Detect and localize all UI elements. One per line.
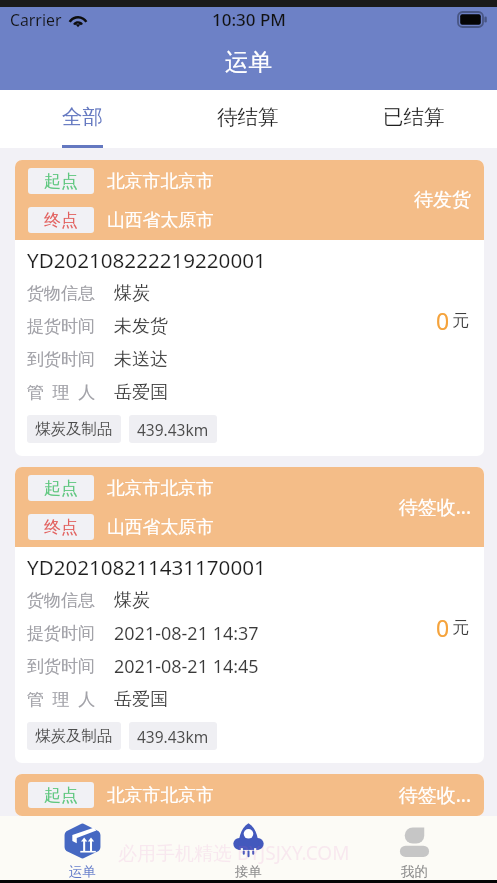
staticText: 提货时间	[27, 623, 95, 644]
button[interactable]: 接单	[165, 816, 331, 880]
button[interactable]: 起点	[15, 774, 484, 816]
staticText: 我的	[401, 863, 428, 880]
staticText: 北京市北京市	[107, 784, 214, 806]
staticText: 运单	[225, 47, 272, 77]
staticText: 运单	[69, 863, 96, 880]
staticText: 未送达	[114, 348, 168, 371]
staticText: 到货时间	[27, 656, 95, 677]
staticText: 提货时间	[27, 316, 95, 337]
staticText: 山西省太原市	[107, 516, 214, 538]
staticText: 起点	[44, 171, 78, 192]
staticText: 山西省太原市	[107, 209, 214, 231]
staticText: 终点	[44, 517, 78, 538]
staticText: 货物信息	[27, 590, 95, 611]
button[interactable]: 我的	[331, 816, 497, 880]
staticText: 起点	[44, 785, 78, 806]
staticText: 岳爱国	[114, 688, 168, 711]
staticText: 接单	[235, 863, 262, 880]
staticText: 北京市北京市	[107, 477, 214, 499]
staticText: YD202108222219220001	[27, 246, 266, 274]
button[interactable]: 待结算	[165, 90, 331, 148]
staticText: 元	[452, 617, 469, 638]
staticText: 439.43km	[137, 726, 209, 747]
button[interactable]: 已结算	[331, 90, 497, 148]
staticText: 0	[436, 305, 450, 336]
button[interactable]: 起点	[15, 467, 484, 763]
button[interactable]: 运单	[0, 816, 165, 880]
staticText: 待签收...	[391, 782, 471, 808]
staticText: YD202108211431170001	[27, 553, 266, 581]
staticText: 煤炭及制品	[35, 419, 113, 439]
staticText: 起点	[44, 478, 78, 499]
staticText: 待签收...	[391, 494, 471, 520]
staticText: 煤炭	[114, 589, 150, 612]
staticText: 元	[452, 310, 469, 331]
staticText: 待结算	[217, 104, 279, 130]
staticText: 煤炭	[114, 282, 150, 305]
staticText: 北京市北京市	[107, 170, 214, 192]
staticText: 必用手机精选 BYJSJXY.COM	[118, 840, 350, 866]
staticText: 10:30 PM	[212, 8, 286, 31]
staticText: Carrier	[10, 9, 62, 31]
staticText: 439.43km	[137, 419, 209, 440]
button[interactable]: 起点	[15, 160, 484, 456]
staticText: 全部	[62, 104, 103, 130]
staticText: 2021-08-21 14:37	[114, 621, 259, 646]
staticText: 已结算	[383, 104, 445, 130]
staticText: 到货时间	[27, 349, 95, 370]
staticText: 货物信息	[27, 283, 95, 304]
staticText: 待发货	[391, 188, 471, 212]
staticText: 岳爱国	[114, 381, 168, 404]
staticText: 0	[436, 612, 450, 643]
staticText: 未发货	[114, 315, 168, 338]
staticText: 2021-08-21 14:45	[114, 654, 259, 679]
staticText: 煤炭及制品	[35, 726, 113, 746]
staticText: 管理人	[27, 689, 104, 710]
staticText: 终点	[44, 210, 78, 231]
staticText: 管理人	[27, 382, 104, 403]
button[interactable]: 全部	[0, 90, 165, 148]
